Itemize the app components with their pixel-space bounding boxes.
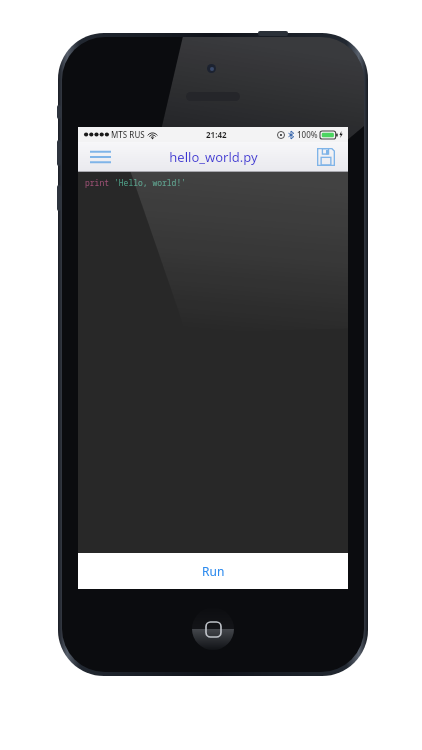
staticText: 21:42 xyxy=(206,129,227,140)
button[interactable]: Menu xyxy=(78,142,122,172)
button[interactable]: Home xyxy=(192,608,234,650)
staticText: print xyxy=(85,177,114,188)
staticText: MTS RUS xyxy=(111,129,145,140)
staticText: 100% xyxy=(297,129,318,140)
button[interactable]: Save xyxy=(304,142,348,172)
staticText: 'Hello, world!' xyxy=(114,177,186,188)
staticText: hello_world.py xyxy=(169,148,258,166)
button[interactable]: Run xyxy=(78,553,348,589)
staticText: Run xyxy=(202,563,225,579)
